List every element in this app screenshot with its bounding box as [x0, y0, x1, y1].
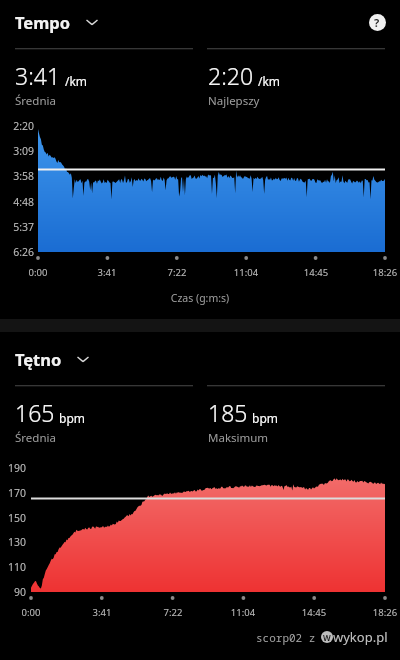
staticText: 0:00: [1, 606, 61, 619]
staticText: 7:22: [147, 266, 207, 279]
staticText: 14:45: [286, 266, 346, 279]
staticText: 7:22: [143, 606, 203, 619]
staticText: Tempo: [15, 11, 71, 33]
staticText: 110: [0, 560, 26, 574]
staticText: 4:48: [0, 195, 34, 209]
staticText: 165: [15, 397, 55, 428]
staticText: 130: [0, 535, 26, 549]
staticText: /km: [65, 73, 88, 89]
staticText: 150: [0, 511, 26, 525]
staticText: Średnia: [15, 93, 56, 109]
button[interactable]: 3:41: [15, 60, 200, 109]
staticText: 3:09: [0, 144, 34, 158]
staticText: 3:41: [72, 606, 132, 619]
staticText: 11:04: [216, 266, 276, 279]
staticText: 190: [0, 461, 26, 475]
staticText: 6:26: [0, 245, 34, 259]
staticText: 18:26: [355, 266, 400, 279]
staticText: 3:41: [15, 60, 61, 91]
staticText: 3:41: [77, 266, 137, 279]
staticText: Czas (g:m:s): [0, 291, 400, 305]
staticText: 18:26: [355, 606, 400, 619]
staticText: 14:45: [284, 606, 344, 619]
staticText: scorp02 z: [256, 630, 316, 645]
staticText: 90: [0, 585, 26, 599]
button[interactable]: Tętno: [15, 348, 90, 370]
staticText: bpm: [59, 410, 85, 426]
staticText: Tętno: [15, 348, 62, 370]
staticText: 185: [208, 397, 248, 428]
staticText: 0:00: [8, 266, 68, 279]
staticText: 11:04: [213, 606, 273, 619]
staticText: /km: [258, 73, 281, 89]
staticText: 3:58: [0, 169, 34, 183]
staticText: Średnia: [15, 430, 56, 446]
button[interactable]: Tempo: [15, 11, 99, 33]
button[interactable]: Help: [366, 11, 388, 33]
staticText: 170: [0, 486, 26, 500]
staticText: Najlepszy: [208, 93, 260, 109]
button[interactable]: 2:20: [208, 60, 400, 109]
staticText: 5:37: [0, 220, 34, 234]
staticText: bpm: [252, 410, 278, 426]
staticText: 2:20: [0, 119, 34, 133]
staticText: Maksimum: [208, 430, 269, 446]
staticText: 2:20: [208, 60, 254, 91]
staticText: ?: [374, 15, 380, 30]
staticText: W: [323, 632, 331, 643]
staticText: wykop.pl: [333, 628, 388, 646]
button[interactable]: 185: [208, 397, 400, 446]
button[interactable]: 165: [15, 397, 200, 446]
